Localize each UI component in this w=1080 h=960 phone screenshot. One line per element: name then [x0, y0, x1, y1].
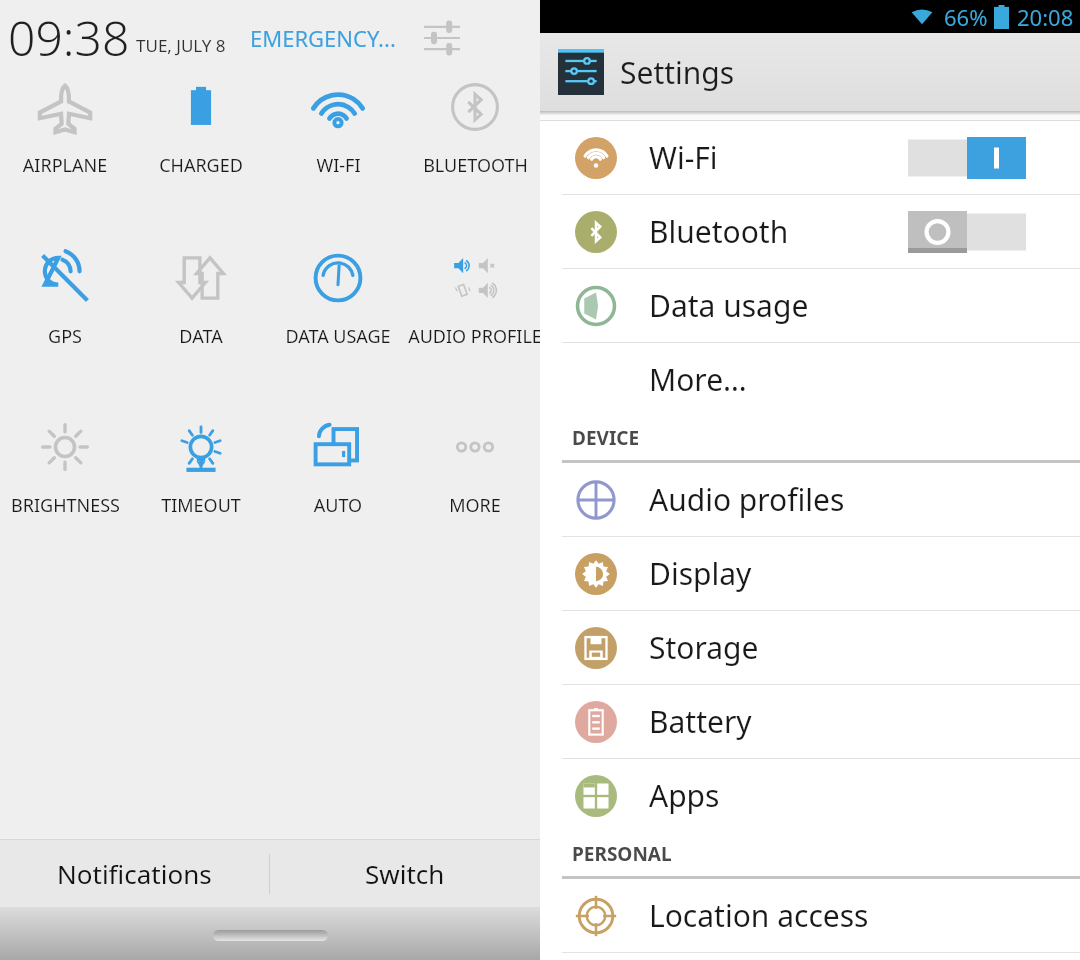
staticText: DEVICE: [572, 425, 640, 451]
button[interactable]: Battery: [540, 685, 1080, 758]
button[interactable]: Switch: [270, 840, 540, 907]
staticText: Audio profiles: [649, 479, 845, 520]
staticText: AUTO ROTATION: [271, 493, 405, 518]
staticText: 09:38: [8, 5, 130, 70]
staticText: More…: [649, 359, 747, 400]
staticText: DATA USAGE: [285, 324, 391, 349]
button[interactable]: AUTO ROTATION: [271, 415, 405, 531]
staticText: CHARGED: [159, 153, 243, 178]
button[interactable]: Apps: [540, 759, 1080, 832]
button[interactable]: DATA USAGE: [271, 246, 405, 362]
button[interactable]: BLUETOOTH: [408, 75, 542, 191]
staticText: 20:08: [1017, 2, 1074, 32]
button[interactable]: EMERGENCY...: [248, 21, 398, 55]
button[interactable]: Data usage: [540, 269, 1080, 342]
button[interactable]: More…: [540, 343, 1080, 416]
button[interactable]: BRIGHTNESS: [0, 415, 132, 531]
button[interactable]: AIRPLANE MODE: [0, 75, 132, 191]
staticText: WI-FI: [316, 153, 361, 178]
button[interactable]: Wi-Fi toggle: [908, 137, 1026, 179]
button[interactable]: Audio profiles: [540, 463, 1080, 536]
staticText: Location access: [649, 895, 869, 936]
staticText: DATA CONNECTION: [134, 324, 268, 349]
staticText: BRIGHTNESS: [11, 493, 120, 518]
button[interactable]: Bluetooth toggle: [908, 211, 1026, 253]
staticText: MORE: [449, 493, 501, 518]
staticText: Apps: [649, 775, 720, 816]
staticText: Data usage: [649, 285, 809, 326]
staticText: Storage: [649, 627, 759, 668]
button[interactable]: GPS: [0, 246, 132, 362]
staticText: Notifications: [57, 856, 212, 891]
staticText: AIRPLANE MODE: [0, 153, 132, 178]
staticText: AUDIO PROFILE: [408, 324, 542, 349]
staticText: Bluetooth: [649, 211, 789, 252]
staticText: GPS: [48, 324, 82, 349]
staticText: TUE, JULY 8: [136, 34, 226, 57]
staticText: Battery: [649, 701, 752, 742]
button[interactable]: Notifications: [0, 840, 269, 907]
staticText: Switch: [365, 856, 445, 891]
button[interactable]: MORE: [408, 415, 542, 531]
staticText: TIMEOUT: [161, 493, 241, 518]
staticText: BLUETOOTH: [423, 153, 528, 178]
button[interactable]: Location access: [540, 879, 1080, 952]
button[interactable]: Bluetooth: [540, 195, 1080, 268]
staticText: Settings: [620, 52, 735, 93]
button[interactable]: AUDIO PROFILE: [408, 246, 542, 362]
staticText: Wi-Fi: [649, 137, 718, 178]
staticText: EMERGENCY...: [250, 23, 396, 53]
staticText: 66%: [944, 2, 988, 32]
button[interactable]: Storage: [540, 611, 1080, 684]
button[interactable]: DATA CONNECTION: [134, 246, 268, 362]
staticText: Display: [649, 553, 752, 594]
button[interactable]: TIMEOUT: [134, 415, 268, 531]
button[interactable]: Settings app icon: [558, 49, 604, 95]
button[interactable]: WI-FI: [271, 75, 405, 191]
button[interactable]: Wi-Fi: [540, 121, 1080, 194]
button[interactable]: CHARGED: [134, 75, 268, 191]
button[interactable]: Display: [540, 537, 1080, 610]
staticText: PERSONAL: [572, 841, 672, 867]
button[interactable]: Quick settings tuner: [416, 12, 468, 64]
